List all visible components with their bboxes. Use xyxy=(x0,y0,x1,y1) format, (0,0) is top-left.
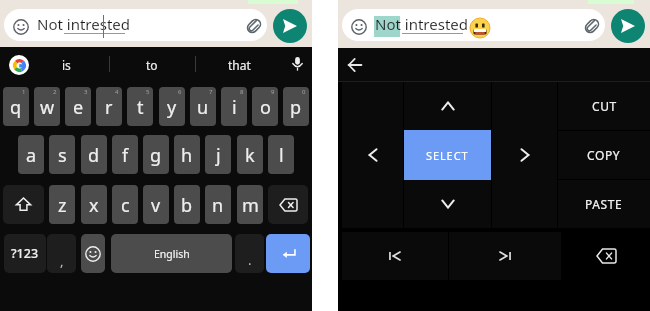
staticText: 0 xyxy=(302,88,306,96)
staticText: l xyxy=(279,143,284,168)
button[interactable]: k xyxy=(237,135,263,174)
button[interactable]: Backspace xyxy=(268,185,308,224)
staticText: 1 xyxy=(22,88,26,96)
button[interactable]: to xyxy=(122,47,182,83)
staticText: 5 xyxy=(146,88,150,96)
staticText: PASTE xyxy=(585,196,623,212)
staticText: o xyxy=(260,95,271,120)
button[interactable]: Move up xyxy=(404,82,491,130)
button[interactable]: y xyxy=(159,87,185,126)
button[interactable]: ?123 xyxy=(4,234,46,273)
button[interactable]: Move left xyxy=(342,82,403,228)
button[interactable]: Backspace xyxy=(562,232,650,280)
staticText: English xyxy=(154,247,190,261)
button[interactable]: u xyxy=(190,87,216,126)
button[interactable]: Attach xyxy=(583,17,601,35)
staticText: y xyxy=(167,95,177,120)
staticText: ?123 xyxy=(11,245,39,262)
staticText: m xyxy=(242,193,259,218)
staticText: 4 xyxy=(115,88,119,96)
button[interactable]: j xyxy=(205,135,231,174)
button[interactable]: e xyxy=(65,87,91,126)
button[interactable]: SELECT xyxy=(404,130,491,180)
staticText: g xyxy=(150,143,162,168)
staticText: c xyxy=(121,193,130,218)
staticText: 8 xyxy=(240,88,244,96)
button[interactable]: Move to start xyxy=(342,232,448,280)
button[interactable]: Google xyxy=(9,55,29,75)
staticText: , xyxy=(60,252,64,270)
button[interactable]: c xyxy=(112,185,138,224)
button[interactable]: o xyxy=(252,87,278,126)
button[interactable]: Attach xyxy=(245,17,263,35)
button[interactable]: d xyxy=(81,135,107,174)
staticText: that xyxy=(228,57,251,73)
button[interactable]: Enter xyxy=(266,234,310,273)
button[interactable]: Emoji xyxy=(81,234,105,273)
button[interactable]: v xyxy=(143,185,169,224)
button[interactable]: is xyxy=(36,47,96,83)
staticText: CUT xyxy=(592,98,617,114)
button[interactable]: a xyxy=(18,135,44,174)
button[interactable]: Move down xyxy=(404,180,491,228)
button[interactable]: r xyxy=(96,87,122,126)
staticText: z xyxy=(58,193,67,218)
button[interactable]: . xyxy=(235,234,264,273)
button[interactable]: CUT xyxy=(558,82,650,130)
staticText: a xyxy=(26,143,37,168)
button[interactable]: Shift xyxy=(3,185,44,224)
button[interactable]: Send xyxy=(611,9,645,43)
button[interactable]: z xyxy=(49,185,75,224)
button[interactable]: n xyxy=(205,185,231,224)
button[interactable]: English xyxy=(111,234,232,273)
staticText: h xyxy=(181,143,193,168)
staticText: w xyxy=(40,95,55,120)
staticText: k xyxy=(245,143,255,168)
button[interactable]: x xyxy=(81,185,107,224)
staticText: i xyxy=(232,95,237,120)
button[interactable]: COPY xyxy=(558,131,650,179)
button[interactable]: , xyxy=(47,234,76,273)
button[interactable]: t xyxy=(127,87,153,126)
button[interactable]: w xyxy=(34,87,60,126)
staticText: 7 xyxy=(209,88,213,96)
button[interactable]: Send xyxy=(273,9,307,43)
staticText: to xyxy=(146,57,158,73)
button[interactable]: q xyxy=(3,87,29,126)
staticText: b xyxy=(181,193,193,218)
button[interactable]: m xyxy=(237,185,263,224)
staticText: . xyxy=(248,251,252,269)
staticText: v xyxy=(151,193,161,218)
staticText: is xyxy=(62,57,71,73)
staticText: SELECT xyxy=(426,148,469,163)
button[interactable]: f xyxy=(112,135,138,174)
button[interactable]: g xyxy=(143,135,169,174)
button[interactable]: Voice input xyxy=(289,55,306,72)
button[interactable]: Not intrested xyxy=(342,9,605,41)
button[interactable]: PASTE xyxy=(558,180,650,228)
staticText: n xyxy=(212,193,224,218)
staticText: Not intrested xyxy=(375,14,468,34)
staticText: r xyxy=(105,95,113,120)
button[interactable]: p xyxy=(283,87,309,126)
staticText: x xyxy=(89,193,99,218)
button[interactable]: b xyxy=(174,185,200,224)
button[interactable]: i xyxy=(221,87,247,126)
button[interactable]: h xyxy=(174,135,200,174)
staticText: Not intrested xyxy=(37,14,130,34)
button[interactable]: Move to end xyxy=(449,232,561,280)
staticText: COPY xyxy=(587,147,621,163)
button[interactable]: Back xyxy=(342,52,368,78)
staticText: 2 xyxy=(53,88,57,96)
staticText: 9 xyxy=(271,88,275,96)
button[interactable]: Move right xyxy=(492,82,557,228)
staticText: u xyxy=(197,95,209,120)
button[interactable]: l xyxy=(268,135,294,174)
staticText: t xyxy=(137,95,144,120)
staticText: s xyxy=(58,143,67,168)
button[interactable]: Not intrested xyxy=(4,9,267,41)
staticText: f xyxy=(122,143,129,168)
button[interactable]: s xyxy=(49,135,75,174)
staticText: 6 xyxy=(178,88,182,96)
button[interactable]: that xyxy=(209,47,269,83)
